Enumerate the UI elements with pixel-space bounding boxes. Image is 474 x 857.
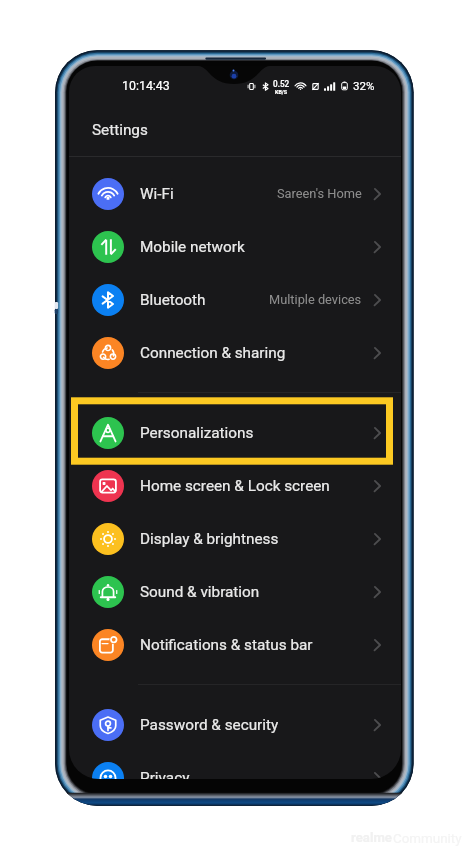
button[interactable]: Password & security [69,698,401,751]
staticText: Display & brightness [140,530,279,548]
button[interactable]: Mobile network [69,220,401,273]
staticText: Multiple devices [269,292,362,307]
button[interactable]: Display & brightness [69,512,401,565]
button[interactable]: Notifications & status bar [69,618,401,671]
button[interactable]: Home screen & Lock screen [69,459,401,512]
staticText: Privacy [140,769,190,779]
staticText: Mobile network [140,238,245,256]
staticText: 0.52 [273,79,290,89]
staticText: Community [393,831,462,847]
button[interactable]: Wi-Fi [69,167,401,220]
staticText: realme [351,830,392,845]
button[interactable]: Privacy [69,751,401,779]
staticText: Password & security [140,716,279,734]
button[interactable]: Bluetooth [69,273,401,326]
staticText: Bluetooth [140,291,206,309]
staticText: Wi-Fi [140,185,174,203]
staticText: Home screen & Lock screen [140,477,330,495]
staticText: Sareen's Home [277,186,362,201]
staticText: 10:14:43 [122,78,170,93]
staticText: Notifications & status bar [140,636,313,654]
button[interactable]: Connection & sharing [69,326,401,379]
staticText: Personalizations [140,424,254,442]
staticText: Connection & sharing [140,344,286,362]
button[interactable]: Personalizations [69,406,401,459]
button[interactable]: Sound & vibration [69,565,401,618]
staticText: Settings [92,121,148,139]
staticText: 32% [353,79,375,93]
staticText: Sound & vibration [140,583,260,601]
staticText: KB/S [275,89,288,95]
